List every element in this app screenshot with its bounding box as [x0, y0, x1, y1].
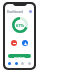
button[interactable]: Stats [14, 61, 19, 66]
button[interactable]: Profile [29, 10, 32, 13]
button[interactable]: Settings [20, 61, 25, 66]
button[interactable]: Continue [8, 54, 31, 58]
staticText: Dashboard [7, 10, 24, 14]
button[interactable]: Profile [27, 61, 32, 66]
button[interactable]: Increase [22, 40, 28, 46]
staticText: 67% [16, 23, 25, 28]
staticText: Continue [14, 55, 25, 58]
button[interactable]: Decrease [11, 40, 17, 46]
button[interactable]: Home [7, 61, 12, 66]
